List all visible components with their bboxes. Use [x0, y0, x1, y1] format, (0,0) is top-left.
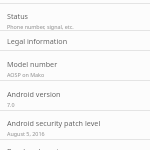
button[interactable]: Legal information: [0, 31, 150, 50]
staticText: Model number: [7, 59, 58, 69]
staticText: Android version: [7, 89, 61, 99]
staticText: Android security patch level: [7, 118, 101, 128]
staticText: August 5, 2016: [7, 130, 45, 137]
staticText: Status: [7, 11, 29, 21]
button[interactable]: Model number: [0, 51, 150, 80]
button[interactable]: Android version: [0, 81, 150, 110]
staticText: Legal information: [7, 36, 68, 46]
staticText: Baseband version: [7, 146, 68, 150]
staticText: Phone number, signal, etc.: [7, 23, 74, 30]
button[interactable]: Baseband version: [0, 140, 150, 150]
button[interactable]: Status: [0, 4, 150, 30]
staticText: AOSP on Mako: [7, 71, 45, 78]
staticText: 7.0: [7, 101, 15, 108]
button[interactable]: Android security patch level: [0, 111, 150, 139]
